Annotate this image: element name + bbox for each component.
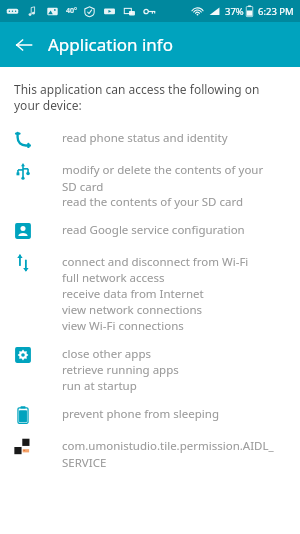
other: SD card access xyxy=(14,162,62,182)
button[interactable]: Read phone status xyxy=(0,130,300,162)
staticText: com.umonistudio.tile.permission.AIDL_ SE… xyxy=(62,438,274,470)
staticText: modify or delete the contents of your SD… xyxy=(62,162,264,194)
staticText: close other apps xyxy=(62,346,151,362)
staticText: connect and disconnect from Wi-Fi xyxy=(62,254,249,270)
button[interactable]: Accounts xyxy=(0,222,300,254)
other: Network xyxy=(14,254,62,274)
other: Wake lock xyxy=(14,406,62,426)
staticText: full network access xyxy=(62,270,165,286)
staticText: read the contents of your SD card xyxy=(62,194,244,210)
button[interactable]: Wake lock xyxy=(0,406,300,438)
button[interactable]: Other xyxy=(0,438,300,482)
staticText: 40° xyxy=(66,6,77,16)
staticText: 6:23 PM xyxy=(258,5,294,18)
button[interactable]: Network xyxy=(0,254,300,346)
other: Read phone status xyxy=(14,130,62,150)
button[interactable]: App management xyxy=(0,346,300,406)
staticText: retrieve running apps xyxy=(62,362,179,378)
staticText: read phone status and identity xyxy=(62,130,228,146)
staticText: receive data from Internet xyxy=(62,286,204,302)
other: Other xyxy=(14,438,62,458)
button[interactable]: SD card access xyxy=(0,162,300,222)
button[interactable]: Back xyxy=(8,29,40,61)
staticText: view Wi-Fi connections xyxy=(62,318,184,334)
staticText: run at startup xyxy=(62,378,137,394)
staticText: This application can access the followin… xyxy=(14,81,260,114)
staticText: view network connections xyxy=(62,302,203,318)
staticText: prevent phone from sleeping xyxy=(62,406,219,422)
staticText: 37% xyxy=(225,5,244,18)
staticText: read Google service configuration xyxy=(62,222,245,238)
other: App management xyxy=(14,346,62,366)
other: Accounts xyxy=(14,222,62,242)
staticText: Application info xyxy=(48,33,174,56)
